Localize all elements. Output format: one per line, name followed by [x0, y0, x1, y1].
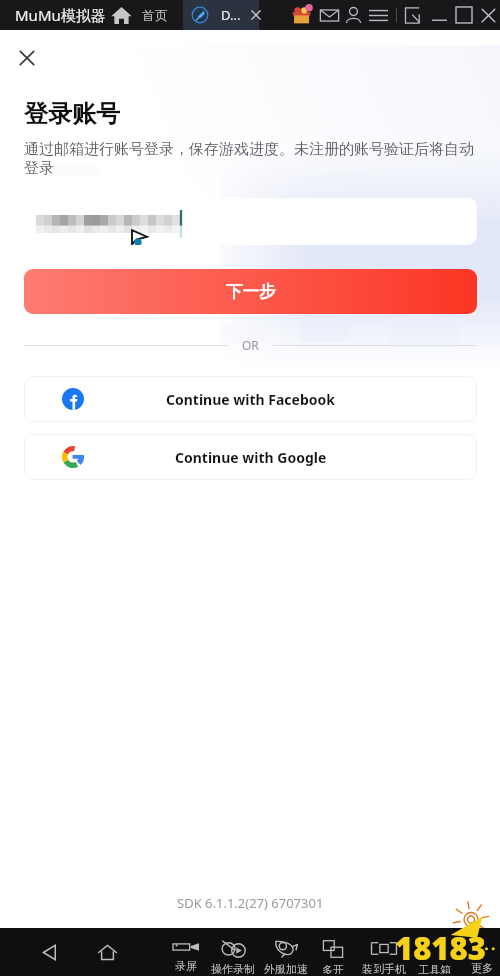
staticText: 通过邮箱进行账号登录，保存游戏进度。未注册的账号验证后将自动登录: [24, 140, 477, 178]
button[interactable]: 外服加速: [260, 930, 312, 974]
button[interactable]: 操作录制: [207, 930, 259, 974]
other: Close tab: [251, 10, 261, 20]
staticText: OR: [242, 337, 259, 353]
button[interactable]: 工具箱: [408, 930, 460, 974]
staticText: 多开: [322, 963, 344, 974]
button[interactable]: 多开: [307, 930, 359, 974]
button[interactable]: D...: [185, 0, 261, 30]
staticText: Continue with Facebook: [166, 390, 335, 409]
button[interactable]: Continue with Facebook: [24, 376, 477, 422]
staticText: 更多: [471, 961, 493, 974]
button[interactable]: 装到手机: [358, 930, 410, 974]
button[interactable]: Maximize: [453, 0, 475, 30]
staticText: 录屏: [175, 959, 197, 973]
button[interactable]: Restore: [401, 0, 426, 30]
staticText: Continue with Google: [175, 448, 327, 467]
staticText: 首页: [142, 7, 168, 23]
staticText: 装到手机: [362, 962, 406, 974]
staticText: 登录账号: [24, 99, 120, 129]
button[interactable]: [24, 198, 477, 245]
button[interactable]: Close: [10, 41, 44, 75]
staticText: 外服加速: [264, 962, 308, 974]
staticText: 工具箱: [418, 963, 451, 974]
button[interactable]: Back: [33, 936, 65, 968]
staticText: MuMu模拟器: [15, 5, 106, 25]
button[interactable]: 下一步: [24, 269, 477, 314]
staticText: 操作录制: [211, 962, 255, 974]
staticText: 18183: [395, 927, 486, 969]
button[interactable]: Gifts: [288, 0, 316, 30]
button[interactable]: 更多: [456, 930, 500, 974]
button[interactable]: Menu: [366, 0, 391, 30]
button[interactable]: Account: [341, 0, 366, 30]
staticText: 下一步: [226, 281, 276, 302]
button[interactable]: Close window: [478, 0, 499, 30]
staticText: SDK 6.1.1.2(27) 6707301: [177, 894, 324, 912]
button[interactable]: Home: [110, 4, 133, 27]
button[interactable]: Messages: [317, 0, 342, 30]
button[interactable]: Minimize: [428, 0, 451, 30]
staticText: D...: [221, 6, 241, 24]
button[interactable]: 录屏: [160, 930, 212, 974]
button[interactable]: Continue with Google: [24, 434, 477, 480]
button[interactable]: Home: [91, 936, 123, 968]
